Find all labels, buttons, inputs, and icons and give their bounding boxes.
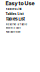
staticText: Available Now [5, 30, 20, 33]
staticText: Tables List [5, 17, 24, 21]
staticText: Reserve a Table [5, 23, 27, 26]
staticText: Reserve a Table [5, 27, 20, 29]
staticText: Tables List [5, 7, 21, 11]
staticText: Tables List [5, 12, 23, 16]
staticText: Easy to Use [5, 0, 34, 6]
